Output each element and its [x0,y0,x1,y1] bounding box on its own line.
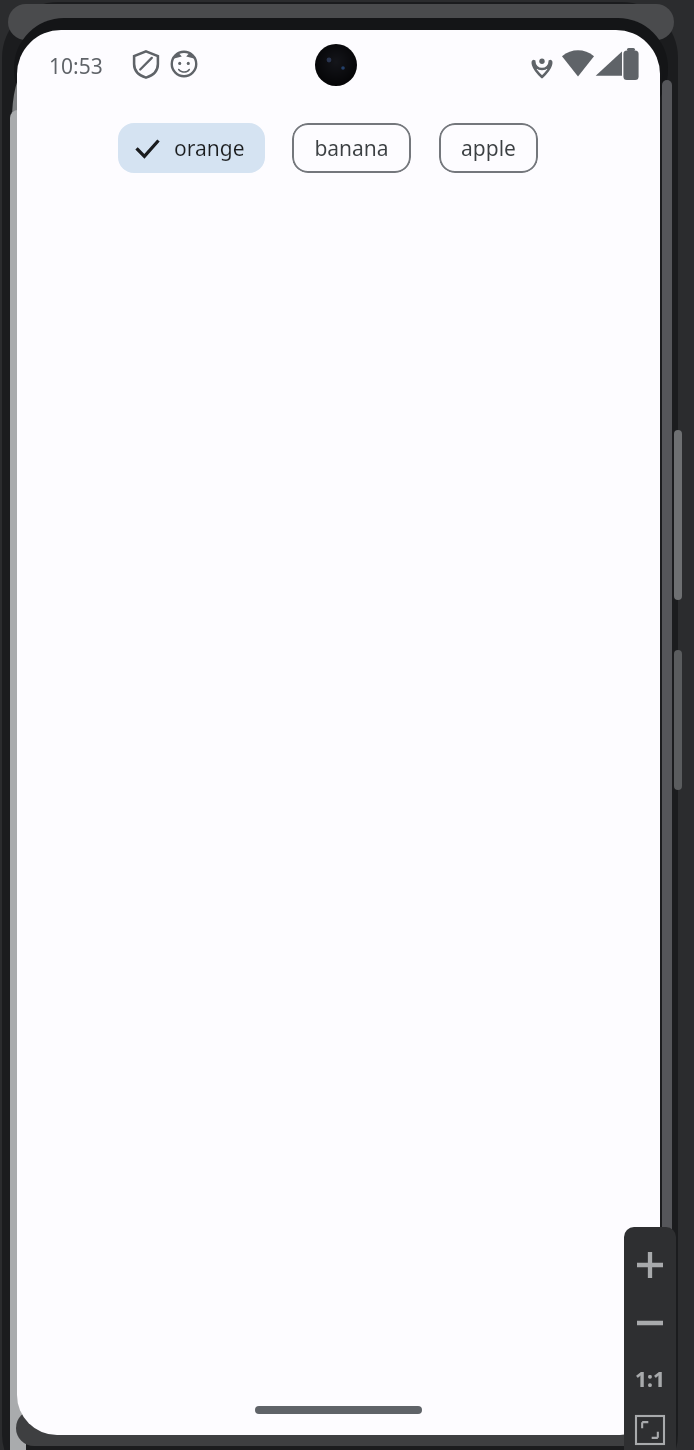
staticText: orange [174,134,245,163]
staticText: apple [461,134,516,163]
staticText: 1:1 [635,1365,665,1394]
button[interactable]: banana [292,123,411,173]
button[interactable]: 1:1 [624,1353,676,1405]
button[interactable]: Zoom in [624,1239,676,1291]
button[interactable]: Zoom out [624,1297,676,1349]
button[interactable]: apple [439,123,538,173]
button[interactable]: orange [118,123,265,173]
button[interactable]: Fit to screen [624,1409,676,1450]
staticText: 10:53 [49,52,103,81]
staticText: banana [314,134,389,163]
